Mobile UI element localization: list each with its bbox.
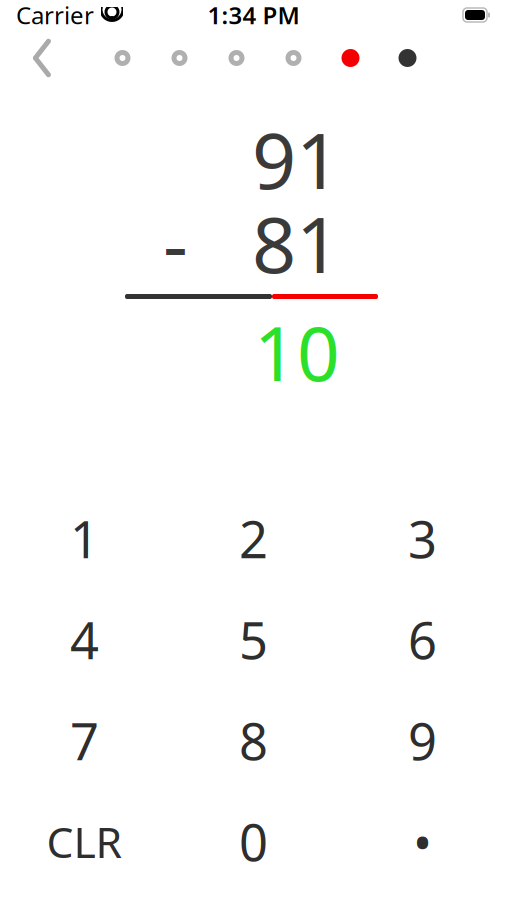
button[interactable]: • bbox=[338, 791, 507, 892]
button[interactable]: 4 bbox=[0, 589, 169, 690]
button[interactable]: 0 bbox=[169, 791, 338, 892]
button[interactable]: 3 bbox=[338, 488, 507, 589]
staticText: 0 bbox=[239, 808, 268, 875]
staticText: 6 bbox=[408, 606, 437, 673]
staticText: 8 bbox=[239, 707, 268, 774]
staticText: 2 bbox=[239, 505, 268, 572]
staticText: 81 bbox=[252, 192, 340, 294]
button[interactable]: 7 bbox=[0, 690, 169, 791]
staticText: 10 bbox=[254, 302, 340, 402]
staticText: 3 bbox=[408, 505, 437, 572]
button[interactable]: CLR bbox=[0, 791, 169, 892]
staticText: 4 bbox=[70, 606, 99, 673]
button[interactable]: 9 bbox=[338, 690, 507, 791]
staticText: 1 bbox=[70, 505, 99, 572]
staticText: 91 bbox=[252, 108, 340, 210]
staticText: 5 bbox=[239, 606, 268, 673]
staticText: • bbox=[413, 808, 432, 875]
button[interactable]: 2 bbox=[169, 488, 338, 589]
button[interactable]: 5 bbox=[169, 589, 338, 690]
staticText: 9 bbox=[408, 707, 437, 774]
button[interactable]: Back bbox=[14, 30, 70, 86]
staticText: Carrier bbox=[16, 0, 94, 31]
staticText: 7 bbox=[70, 707, 99, 774]
staticText: 1:34 PM bbox=[207, 0, 299, 31]
button[interactable]: 6 bbox=[338, 589, 507, 690]
staticText: CLR bbox=[46, 813, 122, 870]
button[interactable]: 8 bbox=[169, 690, 338, 791]
staticText: - bbox=[163, 192, 188, 294]
button[interactable]: 1 bbox=[0, 488, 169, 589]
